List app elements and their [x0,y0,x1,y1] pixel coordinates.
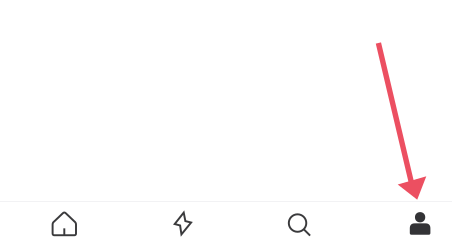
button[interactable]: Search [240,203,358,242]
button[interactable]: Home [5,203,124,242]
button[interactable]: Profile [374,203,452,242]
button[interactable]: Activity [124,203,242,242]
